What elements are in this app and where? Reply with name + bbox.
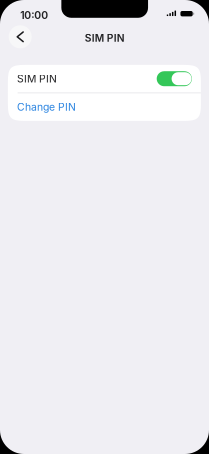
staticText: SIM PIN bbox=[17, 72, 57, 85]
button[interactable]: SIM PIN bbox=[8, 65, 201, 92]
staticText: 10:00 bbox=[20, 9, 48, 21]
button[interactable]: Back bbox=[9, 25, 32, 48]
staticText: Change PIN bbox=[17, 101, 76, 113]
staticText: SIM PIN bbox=[85, 32, 125, 44]
button[interactable]: Change PIN bbox=[8, 93, 201, 121]
